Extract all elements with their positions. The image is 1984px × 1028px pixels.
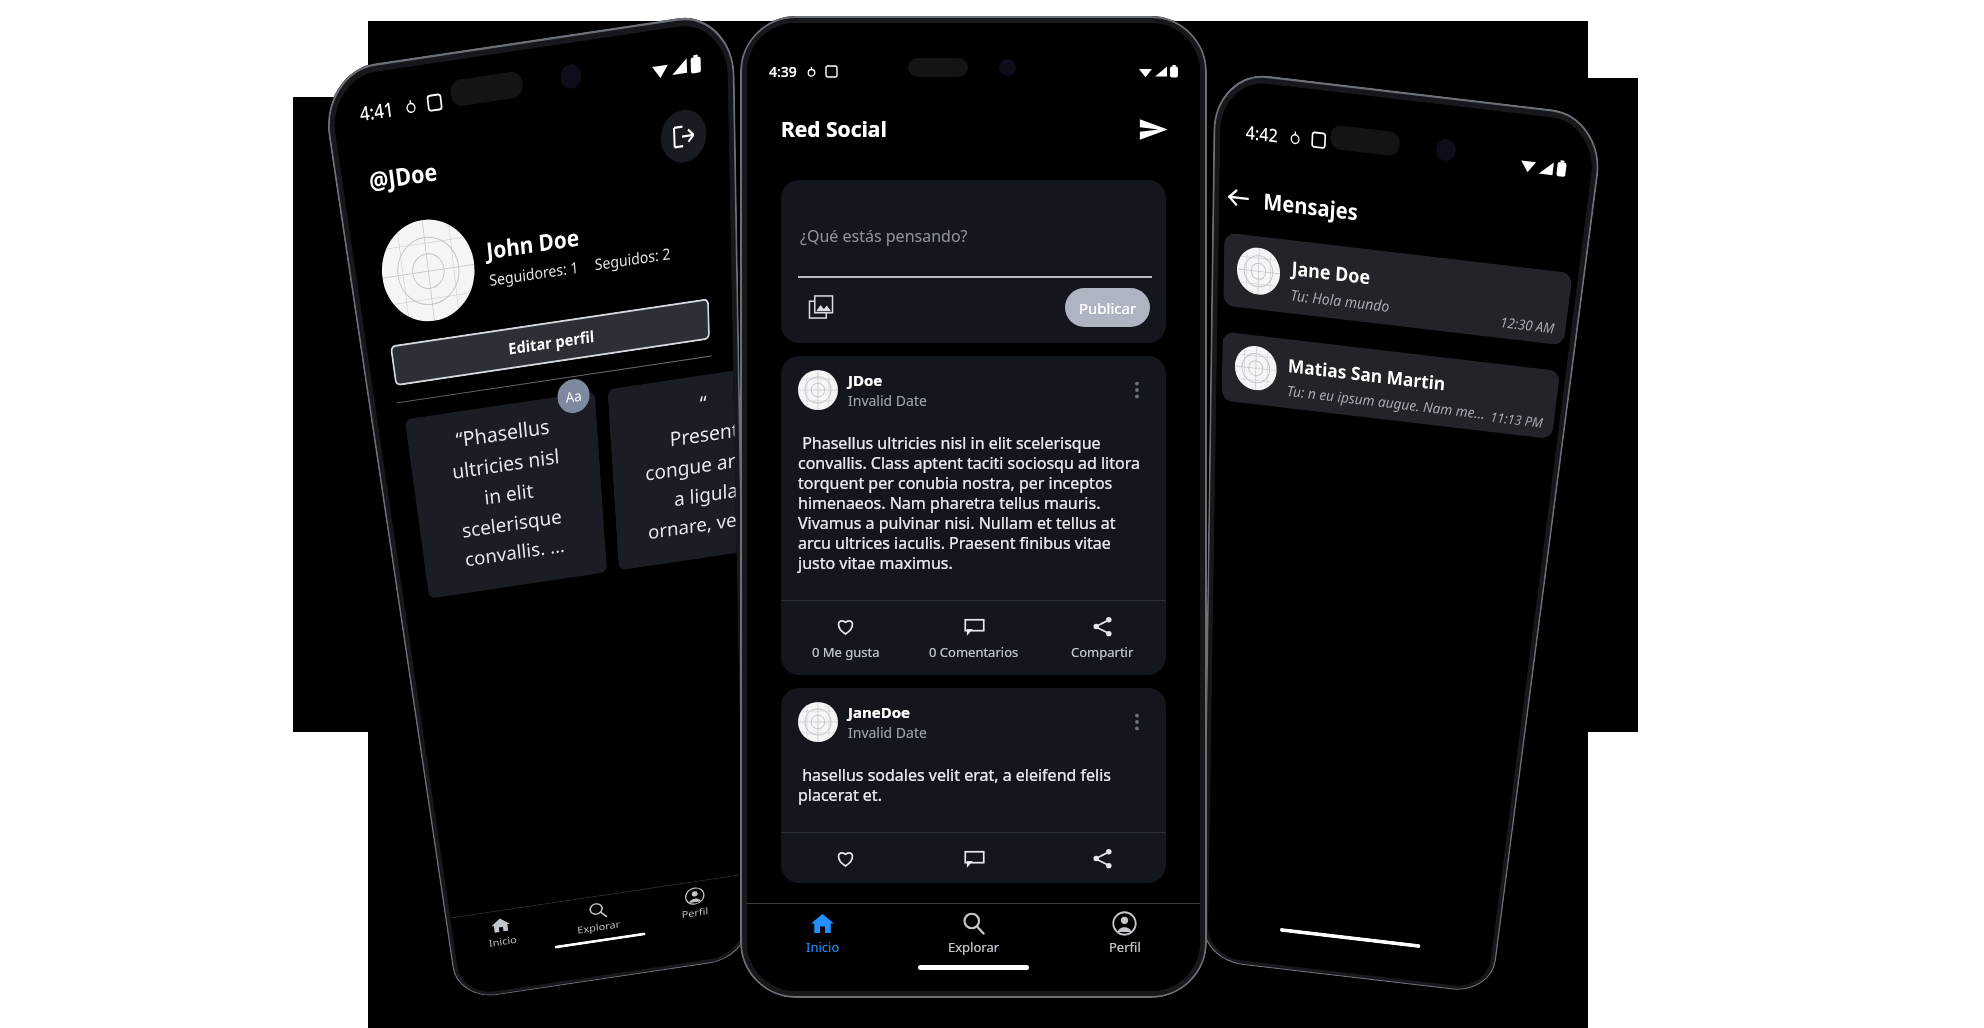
- button[interactable]: 0 Comentarios: [910, 833, 1038, 883]
- button[interactable]: Inicio: [747, 904, 898, 963]
- staticText: Jane Doe: [1289, 255, 1373, 291]
- button[interactable]: Mensajes: [1136, 112, 1170, 146]
- staticText: Invalid Date: [848, 723, 927, 742]
- button[interactable]: Editar perfil: [389, 298, 715, 386]
- button[interactable]: Explorar: [898, 904, 1049, 963]
- staticText: Editar perfil: [506, 325, 597, 359]
- staticText: 11:13 PM: [1489, 407, 1544, 431]
- button[interactable]: Compartir: [1038, 833, 1166, 883]
- staticText: 4:41: [358, 95, 396, 127]
- staticText: “ Present congue arcus a ligula ornare, …: [621, 384, 755, 545]
- staticText: JaneDoe: [848, 702, 910, 722]
- button[interactable]: Más opciones: [1125, 378, 1149, 402]
- button[interactable]: Perfil: [641, 875, 749, 931]
- button[interactable]: “ Present congue arcus a ligula ornare, …: [592, 370, 760, 570]
- staticText: Inicio: [488, 933, 518, 949]
- staticText: Tu: Hola mundo: [1289, 284, 1391, 316]
- button[interactable]: 0 Comentarios: [910, 601, 1038, 675]
- staticText: JDoe: [848, 370, 883, 390]
- button[interactable]: Jane Doe: [1216, 232, 1573, 346]
- staticText: Publicar: [1079, 298, 1137, 318]
- staticText: Matias San Martin: [1285, 353, 1448, 396]
- staticText: Phasellus ultricies nisl in elit sceleri…: [798, 432, 1149, 574]
- staticText: Seguidos: 2: [592, 242, 674, 274]
- button[interactable]: Matias San Martin: [1215, 331, 1560, 439]
- button[interactable]: Más opciones: [1125, 710, 1149, 734]
- staticText: Tu: n eu ipsum augue. Nam metus ur…: [1285, 381, 1487, 423]
- button[interactable]: 0 Me gusta: [781, 601, 910, 675]
- staticText: Inicio: [806, 938, 840, 956]
- button[interactable]: Añadir imagen: [809, 295, 833, 319]
- staticText: Aa: [563, 385, 585, 407]
- button[interactable]: Perfil: [1049, 904, 1200, 963]
- staticText: Perfil: [1109, 938, 1141, 956]
- staticText: 4:42: [1243, 119, 1281, 148]
- staticText: Perfil: [680, 904, 710, 921]
- staticText: Seguidores: 1: [487, 256, 581, 290]
- button[interactable]: Compartir: [1038, 601, 1166, 675]
- button[interactable]: Publicar: [1065, 288, 1150, 327]
- staticText: Explorar: [948, 938, 1000, 956]
- staticText: “Phasellus ultricies nisl in elit sceler…: [438, 409, 582, 572]
- button[interactable]: Cerrar sesión: [654, 107, 713, 166]
- button[interactable]: “Phasellus ultricies nisl in elit sceler…: [402, 391, 621, 599]
- staticText: Invalid Date: [848, 391, 927, 410]
- button[interactable]: Atrás: [1224, 184, 1253, 212]
- staticText: Compartir: [1071, 643, 1134, 661]
- staticText: 0 Comentarios: [929, 643, 1019, 661]
- staticText: 4:39: [769, 62, 797, 81]
- button[interactable]: Explorar: [545, 889, 651, 945]
- staticText: Explorar: [576, 917, 621, 936]
- staticText: Mensajes: [1260, 186, 1361, 228]
- button[interactable]: 0 Me gusta: [781, 833, 910, 883]
- staticText: John Doe: [483, 220, 583, 265]
- staticText: hasellus sodales velit erat, a eleifend …: [798, 764, 1149, 806]
- staticText: ¿Qué estás pensando?: [800, 225, 968, 247]
- staticText: @JDoe: [366, 154, 441, 197]
- staticText: Red Social: [781, 115, 887, 144]
- staticText: 0 Me gusta: [812, 643, 880, 661]
- button[interactable]: Inicio: [450, 904, 553, 959]
- staticText: 12:30 AM: [1499, 312, 1556, 337]
